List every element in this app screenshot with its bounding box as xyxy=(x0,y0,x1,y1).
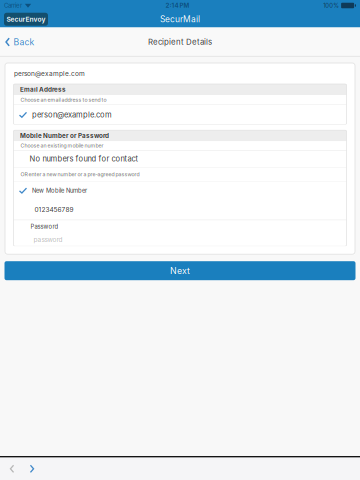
staticText: SecurEnvoy xyxy=(6,15,45,23)
staticText: 2:14 PM xyxy=(165,2,189,9)
button[interactable]: Previous field xyxy=(5,459,19,479)
staticText: 100% xyxy=(323,2,339,9)
staticText: Back xyxy=(13,37,34,47)
staticText: password xyxy=(33,236,62,244)
staticText: person@example.com xyxy=(32,110,112,119)
button[interactable]: New Mobile Number xyxy=(13,182,346,220)
staticText: person@example.com xyxy=(14,69,85,77)
staticText: Choose an email address to send to xyxy=(20,97,106,103)
staticText: No numbers found for contact xyxy=(29,154,137,163)
staticText: Recipient Details xyxy=(148,37,212,47)
staticText: Next xyxy=(170,265,190,276)
button[interactable]: Next field xyxy=(25,459,39,479)
staticText: Password xyxy=(30,223,58,230)
button[interactable]: Next xyxy=(4,261,355,280)
staticText: SecurMail xyxy=(160,14,200,24)
button[interactable]: person@example.com xyxy=(13,105,346,125)
staticText: Choose an existing mobile number xyxy=(20,142,103,149)
staticText: OR enter a new number or a pre-agreed pa… xyxy=(20,171,139,177)
button[interactable]: Back xyxy=(0,27,42,56)
staticText: 0123456789 xyxy=(34,206,73,213)
staticText: Mobile Number or Password xyxy=(20,132,109,139)
staticText: New Mobile Number xyxy=(32,187,87,194)
staticText: Email Address xyxy=(20,86,66,93)
staticText: Carrier xyxy=(4,2,22,9)
